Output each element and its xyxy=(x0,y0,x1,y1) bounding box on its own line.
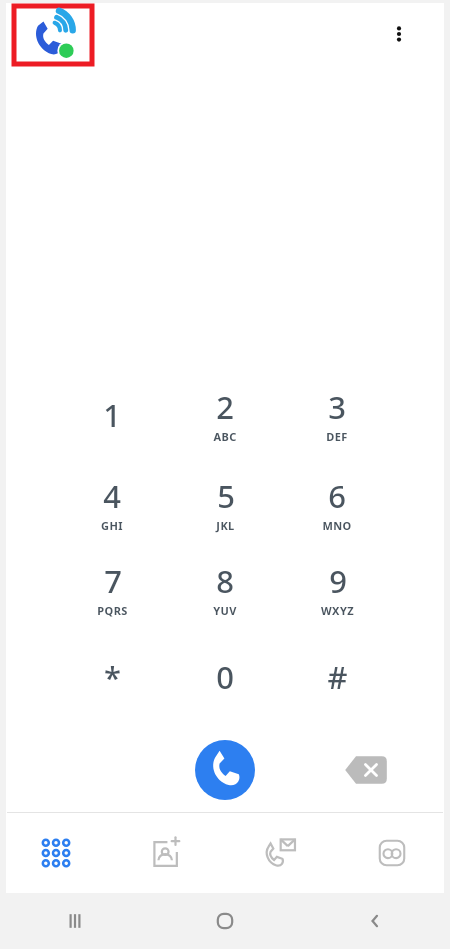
button[interactable]: More options xyxy=(378,12,420,56)
button[interactable]: Keypad xyxy=(0,813,112,893)
staticText: 0 xyxy=(216,656,234,698)
button[interactable]: 2 xyxy=(177,379,273,451)
button[interactable]: Recent apps xyxy=(0,893,150,949)
staticText: YUV xyxy=(213,603,237,618)
button[interactable]: * xyxy=(64,641,160,713)
button[interactable]: Call xyxy=(195,740,255,800)
staticText: JKL xyxy=(216,518,235,533)
staticText: * xyxy=(104,656,121,698)
staticText: 6 xyxy=(328,475,346,517)
button[interactable]: 4 xyxy=(64,468,160,540)
button[interactable]: 0 xyxy=(177,641,273,713)
staticText: GHI xyxy=(101,518,123,533)
button[interactable]: 5 xyxy=(177,468,273,540)
staticText: ABC xyxy=(213,429,237,444)
button[interactable]: Back xyxy=(300,893,450,949)
button[interactable]: 7 xyxy=(64,553,160,625)
staticText: 9 xyxy=(329,560,347,602)
button[interactable]: 8 xyxy=(177,553,273,625)
staticText: MNO xyxy=(322,518,352,533)
staticText: 3 xyxy=(328,386,346,428)
staticText: WXYZ xyxy=(321,603,354,618)
staticText: 2 xyxy=(216,386,234,428)
staticText: 5 xyxy=(217,475,235,517)
staticText: 1 xyxy=(103,394,121,436)
button[interactable]: Home xyxy=(150,893,300,949)
button[interactable]: 3 xyxy=(289,379,385,451)
button[interactable]: Dialer app icon xyxy=(14,6,92,64)
staticText: 4 xyxy=(103,475,121,517)
button[interactable]: 1 xyxy=(64,379,160,451)
staticText: DEF xyxy=(326,429,348,444)
button[interactable]: Voicemail xyxy=(336,813,448,893)
button[interactable]: 6 xyxy=(289,468,385,540)
button[interactable]: # xyxy=(289,641,385,713)
staticText: 7 xyxy=(104,560,122,602)
button[interactable]: Messages xyxy=(224,813,336,893)
staticText: PQRS xyxy=(97,603,128,618)
staticText: 8 xyxy=(216,560,234,602)
staticText: # xyxy=(327,656,348,698)
button[interactable]: Backspace xyxy=(340,749,392,791)
button[interactable]: Add contact xyxy=(112,813,224,893)
button[interactable]: 9 xyxy=(289,553,385,625)
